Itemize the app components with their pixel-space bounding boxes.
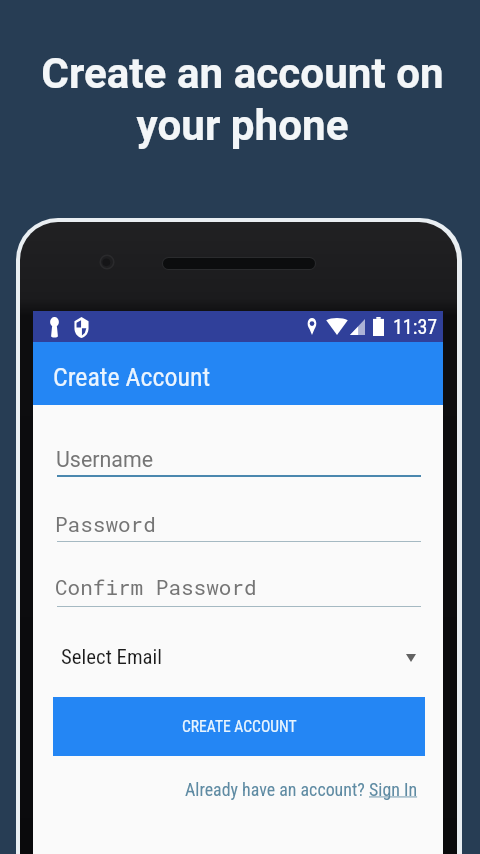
- staticText: Create Account: [53, 362, 211, 392]
- staticText: Already have an account?: [185, 779, 369, 800]
- staticText: Create an account on your phone: [41, 49, 444, 150]
- button[interactable]: Select Email: [52, 636, 427, 676]
- staticText: 11:37: [393, 315, 438, 338]
- button[interactable]: Already have an account?: [185, 779, 418, 800]
- staticText: Sign In: [369, 779, 418, 800]
- button[interactable]: CREATE ACCOUNT: [53, 697, 425, 756]
- button[interactable]: Create Account: [33, 342, 443, 405]
- staticText: Username: [56, 447, 154, 472]
- staticText: Password: [55, 510, 156, 538]
- staticText: Select Email: [61, 645, 163, 669]
- staticText: CREATE ACCOUNT: [182, 718, 297, 736]
- staticText: Confirm Password: [55, 573, 257, 601]
